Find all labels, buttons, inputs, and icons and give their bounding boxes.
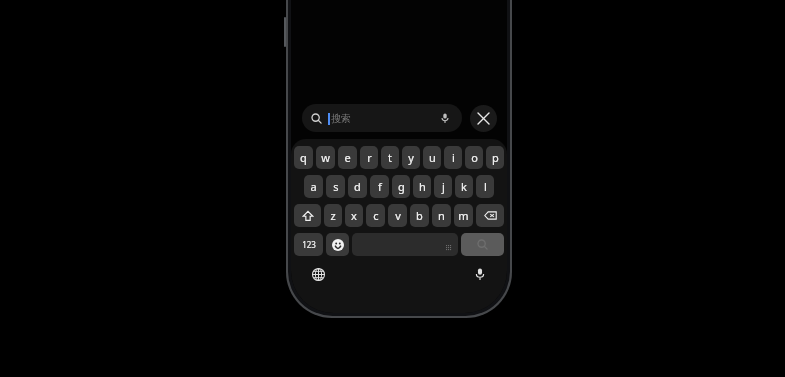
staticText: v [395, 208, 401, 223]
staticText: j [442, 179, 445, 194]
staticText: d [354, 179, 361, 194]
button[interactable]: h [413, 175, 431, 198]
button[interactable]: Backspace [476, 204, 504, 227]
button[interactable]: n [432, 204, 451, 227]
button[interactable]: c [366, 204, 385, 227]
staticText: 搜索 [331, 112, 351, 125]
button[interactable]: s [326, 175, 345, 198]
button[interactable]: g [392, 175, 410, 198]
button[interactable]: Change keyboard [309, 265, 327, 283]
button[interactable]: Space [352, 233, 458, 256]
button[interactable]: q [294, 146, 313, 169]
button[interactable]: Emoji [326, 233, 349, 256]
button[interactable]: Voice input [471, 265, 489, 283]
staticText: c [373, 208, 379, 223]
button[interactable]: w [316, 146, 335, 169]
button[interactable]: k [455, 175, 473, 198]
button[interactable]: m [454, 204, 473, 227]
button[interactable]: i [444, 146, 462, 169]
staticText: n [438, 208, 445, 223]
button[interactable]: d [348, 175, 367, 198]
button[interactable]: y [402, 146, 420, 169]
button[interactable]: z [324, 204, 342, 227]
button[interactable]: e [338, 146, 357, 169]
staticText: e [344, 150, 351, 165]
staticText: g [398, 179, 405, 194]
staticText: o [471, 150, 478, 165]
button[interactable]: u [423, 146, 441, 169]
button[interactable]: t [381, 146, 399, 169]
staticText: h [419, 179, 426, 194]
staticText: f [378, 179, 382, 194]
staticText: l [484, 179, 487, 194]
staticText: i [452, 150, 455, 165]
button[interactable]: r [360, 146, 378, 169]
staticText: s [333, 179, 339, 194]
staticText: a [310, 179, 317, 194]
staticText: b [416, 208, 423, 223]
button[interactable]: l [476, 175, 494, 198]
staticText: z [330, 208, 336, 223]
button[interactable]: Close search [470, 105, 497, 132]
button[interactable]: Voice search [437, 110, 453, 126]
staticText: m [458, 208, 469, 223]
button[interactable]: j [434, 175, 452, 198]
button[interactable]: Shift [294, 204, 321, 227]
staticText: r [367, 150, 372, 165]
button[interactable]: p [486, 146, 504, 169]
staticText: t [388, 150, 392, 165]
button[interactable]: a [304, 175, 323, 198]
button[interactable]: v [388, 204, 407, 227]
button[interactable]: 123 [294, 233, 323, 256]
button[interactable]: o [465, 146, 483, 169]
staticText: 123 [302, 239, 316, 250]
staticText: k [461, 179, 467, 194]
staticText: u [429, 150, 436, 165]
button[interactable]: f [370, 175, 389, 198]
staticText: p [492, 150, 499, 165]
button[interactable]: Search [461, 233, 504, 256]
staticText: y [408, 150, 414, 165]
staticText: w [321, 150, 330, 165]
button[interactable]: 搜索 [302, 104, 462, 132]
staticText: q [300, 150, 307, 165]
button[interactable]: b [410, 204, 429, 227]
button[interactable]: x [345, 204, 363, 227]
staticText: x [351, 208, 357, 223]
